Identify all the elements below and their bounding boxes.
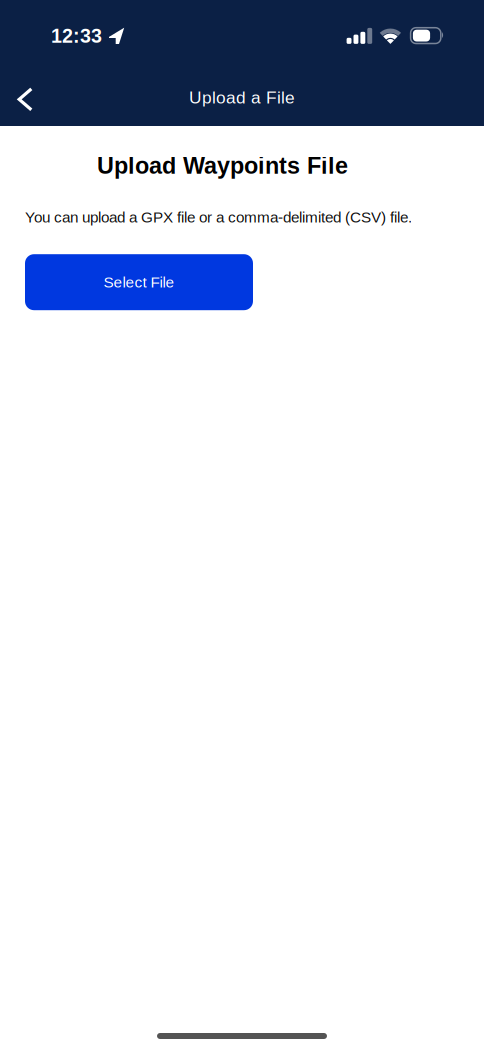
button[interactable]: Back [0, 66, 47, 126]
staticText: Upload Waypoints File [97, 152, 348, 179]
staticText: 12:33 [51, 25, 102, 47]
staticText: You can upload a GPX file or a comma-del… [25, 209, 412, 226]
staticText: Upload a File [189, 88, 295, 107]
button[interactable]: Select File [25, 254, 253, 310]
staticText: Select File [103, 274, 174, 291]
